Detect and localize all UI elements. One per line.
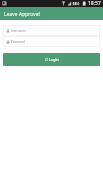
button[interactable]: Password [3,36,100,47]
staticText: Password [11,40,25,44]
button[interactable]: Login [3,53,100,66]
button[interactable]: Username [3,25,100,36]
staticText: Username [11,29,26,33]
staticText: Login [49,57,59,62]
staticText: Leave Approval [4,11,40,17]
staticText: 18:57 [88,0,101,7]
